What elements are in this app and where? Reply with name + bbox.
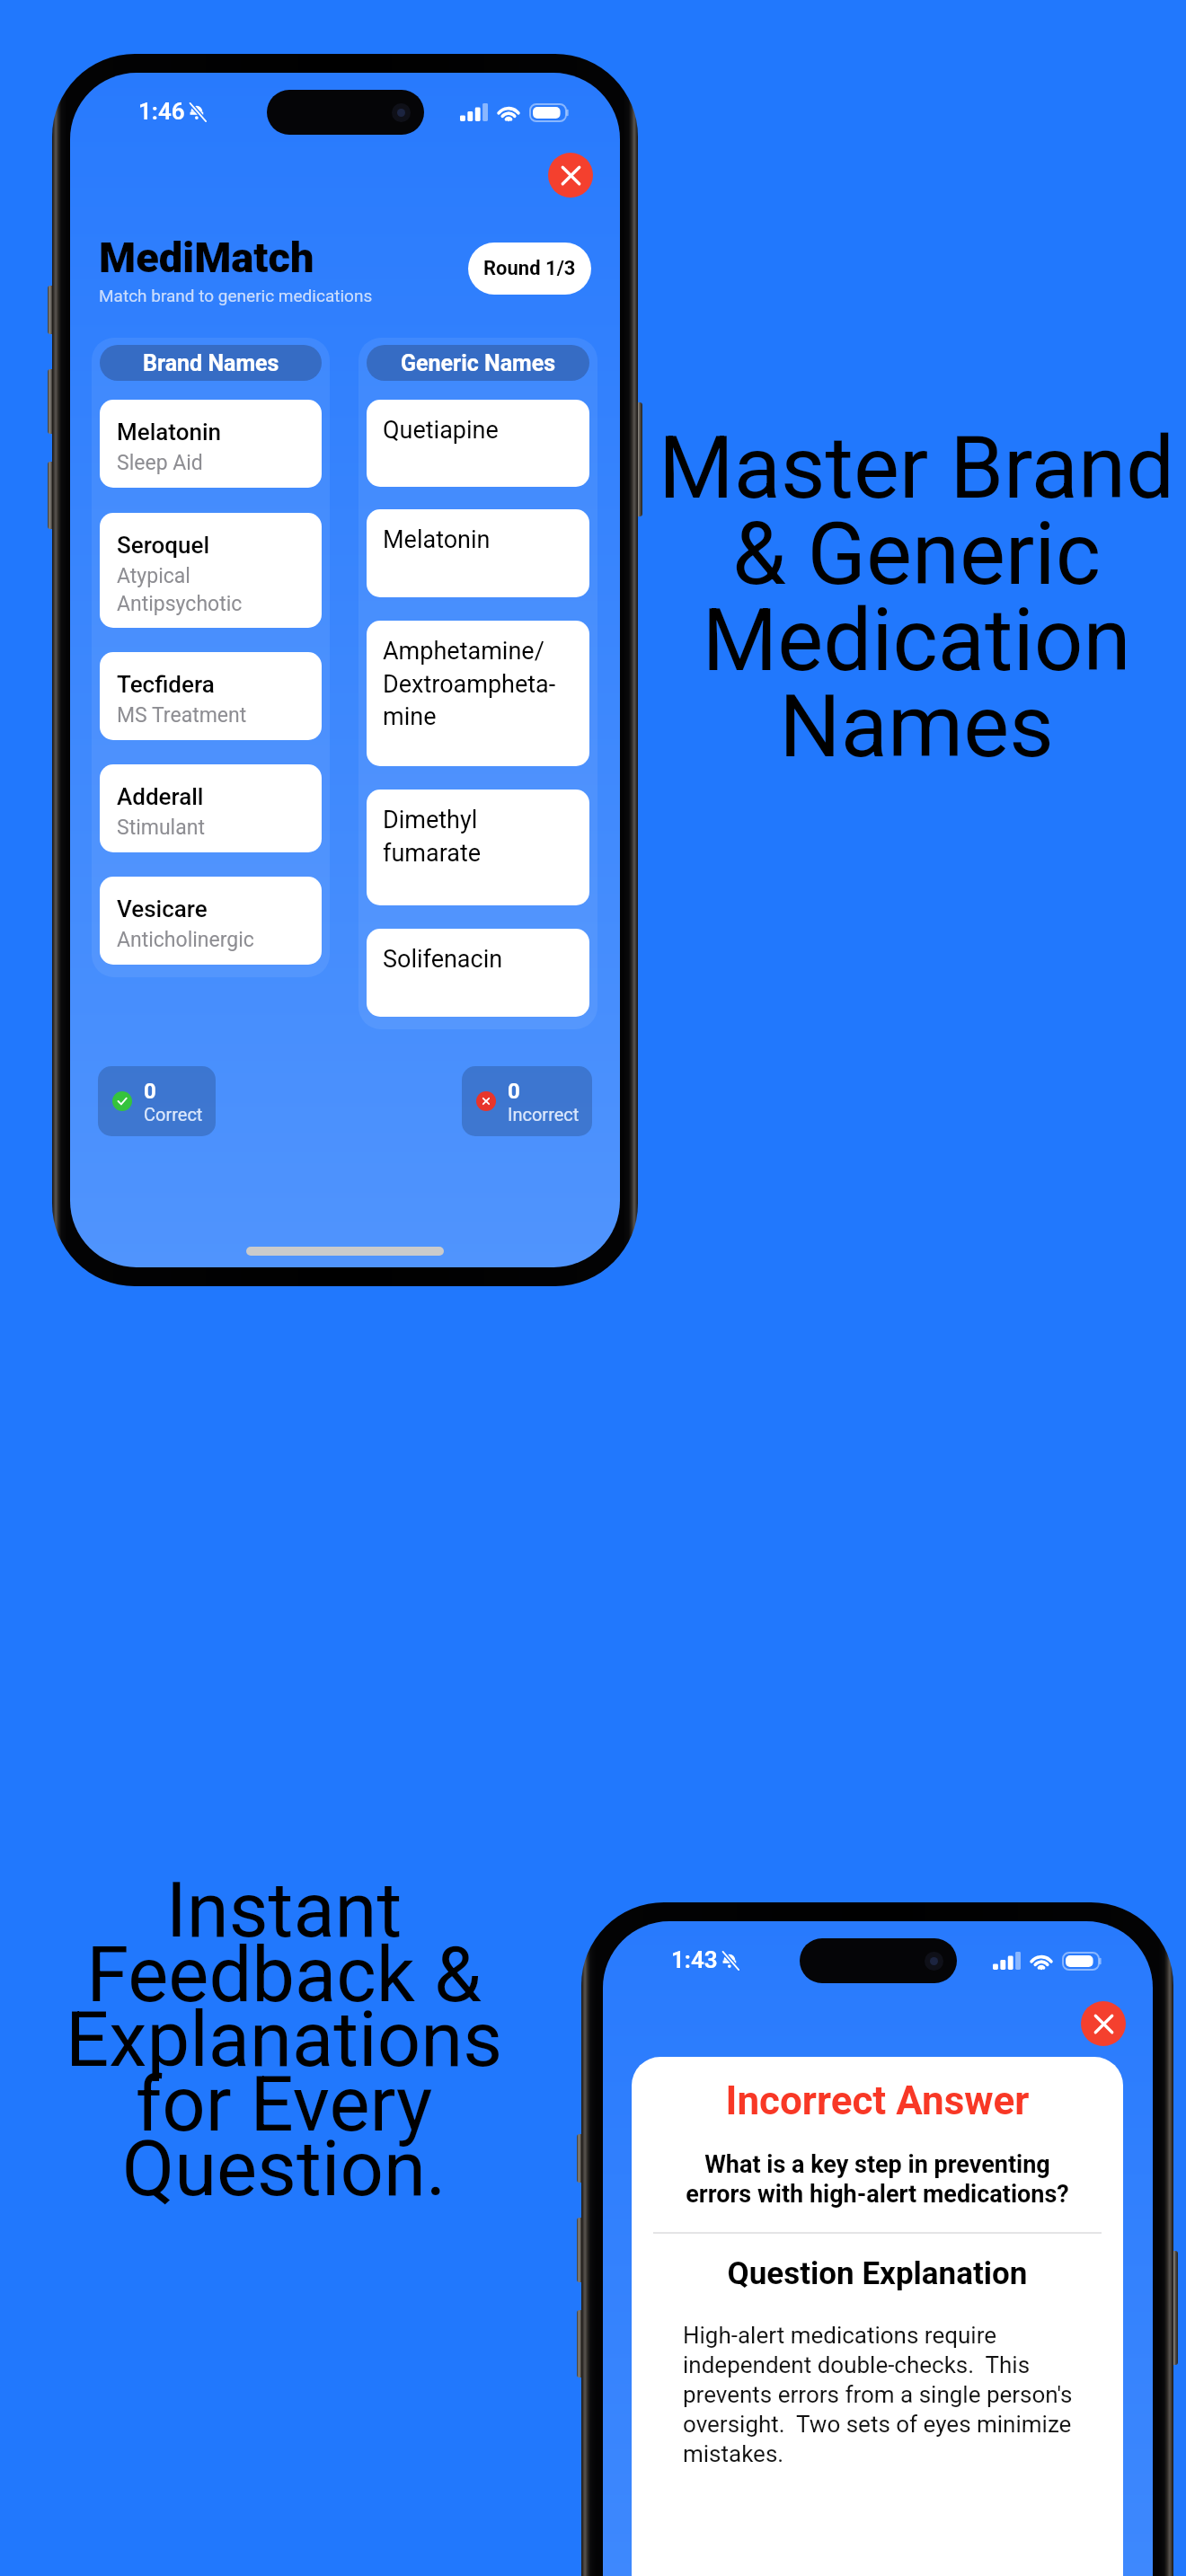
- staticText: Amphetamine/ Dextroampheta- mine: [383, 637, 556, 730]
- staticText: Brand Names: [143, 350, 279, 376]
- staticText: Incorrect Answer: [653, 2078, 1102, 2124]
- button[interactable]: Melatonin: [100, 400, 322, 488]
- staticText: Tecfidera: [117, 671, 215, 698]
- staticText: Solifenacin: [383, 945, 503, 974]
- staticText: Correct: [144, 1104, 203, 1125]
- button[interactable]: Vesicare: [100, 877, 322, 965]
- staticText: Match brand to generic medications: [99, 286, 373, 305]
- staticText: Sleep Aid: [117, 451, 203, 475]
- staticText: Melatonin: [117, 419, 221, 446]
- staticText: Question Explanation: [653, 2255, 1102, 2292]
- button[interactable]: Tecfidera: [100, 652, 322, 740]
- staticText: Stimulant: [117, 816, 205, 840]
- staticText: Master Brand & Generic Medication Names: [647, 418, 1186, 777]
- button[interactable]: Close: [1081, 2001, 1126, 2046]
- staticText: Dimethyl fumarate: [383, 806, 482, 867]
- staticText: 1:46: [138, 98, 185, 125]
- staticText: Quetiapine: [383, 416, 499, 445]
- staticText: Atypical Antipsychotic: [117, 564, 243, 615]
- button[interactable]: Melatonin: [367, 509, 589, 597]
- staticText: 1:43: [671, 1946, 718, 1973]
- button[interactable]: Quetiapine: [367, 400, 589, 487]
- staticText: Adderall: [117, 783, 204, 810]
- button[interactable]: Amphetamine/ Dextroampheta- mine: [367, 621, 589, 766]
- button[interactable]: 0: [462, 1066, 592, 1136]
- staticText: 0: [144, 1079, 156, 1104]
- button[interactable]: Seroquel: [100, 513, 322, 628]
- staticText: Seroquel: [117, 532, 210, 559]
- staticText: MediMatch: [99, 233, 314, 282]
- staticText: High-alert medications require independe…: [683, 2322, 1093, 2467]
- staticText: Anticholinergic: [117, 928, 254, 952]
- button[interactable]: Generic Names: [367, 345, 589, 381]
- button[interactable]: Solifenacin: [367, 929, 589, 1017]
- button[interactable]: Adderall: [100, 764, 322, 852]
- staticText: What is a key step in preventing errors …: [653, 2150, 1102, 2209]
- staticText: 0: [508, 1079, 520, 1104]
- button[interactable]: Close: [548, 153, 593, 198]
- staticText: Generic Names: [401, 350, 556, 376]
- button[interactable]: Brand Names: [100, 345, 322, 381]
- staticText: MS Treatment: [117, 703, 247, 728]
- button[interactable]: Round 1/3: [468, 243, 591, 295]
- staticText: Round 1/3: [483, 257, 576, 280]
- staticText: Incorrect: [508, 1104, 580, 1125]
- staticText: Melatonin: [383, 525, 491, 554]
- button[interactable]: 0: [98, 1066, 216, 1136]
- button[interactable]: Dimethyl fumarate: [367, 790, 589, 905]
- staticText: Vesicare: [117, 895, 208, 922]
- staticText: Instant Feedback & Explanations for Ever…: [14, 1866, 553, 2214]
